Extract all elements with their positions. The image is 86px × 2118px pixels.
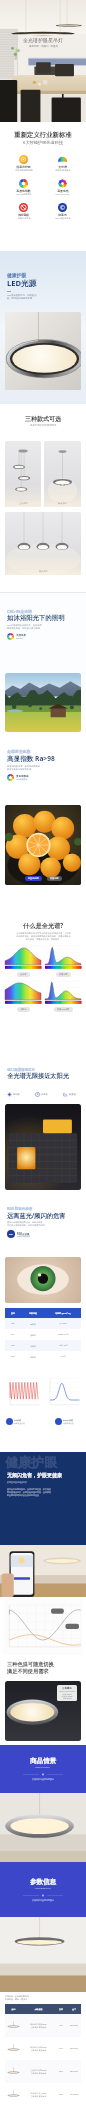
staticText: 36W bbox=[55, 2070, 67, 2073]
staticText: 图示 bbox=[5, 2008, 22, 2010]
staticText: 危害等级 bbox=[21, 1312, 45, 1314]
staticText: 10000~10万 bbox=[45, 1333, 81, 1336]
button[interactable]: 三头吊灯 长度90cm 三色变光 遥控调光 bbox=[5, 2060, 81, 2083]
staticText: 高显色指数 bbox=[16, 189, 31, 193]
staticText: CRI>98 Ra>98 bbox=[55, 193, 70, 196]
staticText: 6大智能护眼先进科技 bbox=[23, 140, 64, 146]
staticText: RG0无蓝光危害 bbox=[55, 217, 71, 220]
staticText: RG0 防蓝光危害 bbox=[7, 1206, 33, 1211]
staticText: LED发光柔和均匀，光照更自 然，明亮更舒适健康护眼 bbox=[7, 294, 37, 300]
staticText: 健康护眼 bbox=[5, 1454, 57, 1470]
button[interactable]: 高显色性 bbox=[43, 179, 82, 196]
staticText: 低危害 bbox=[21, 1334, 45, 1336]
staticText: LED光源 bbox=[7, 278, 37, 288]
staticText: 类别 bbox=[5, 1312, 21, 1314]
staticText: 进口美国普瑞芯片 bbox=[7, 1068, 35, 1072]
staticText: 规格参数 bbox=[22, 2008, 55, 2010]
staticText: 60×20cm bbox=[67, 2047, 81, 2050]
button[interactable]: 低衰减 bbox=[63, 1092, 76, 1097]
staticText: RG0认证级 bbox=[17, 1232, 30, 1235]
staticText: 120×20cm bbox=[67, 2093, 81, 2096]
staticText: 三头吊灯 长度90cm 三色变光 遥控调光 bbox=[22, 2069, 55, 2075]
staticText: 长寿命 bbox=[41, 1093, 48, 1096]
staticText: 环保材料认证 bbox=[63, 1422, 74, 1424]
staticText: 通过RG0国家级检测认证，无蓝光危害 守护家人的双眼健康，长时间使用不伤眼 bbox=[7, 1221, 45, 1227]
staticText: 中危害 bbox=[21, 1345, 45, 1347]
button[interactable]: 低蓝光护眼 bbox=[4, 155, 43, 172]
staticText: 远离蓝光/频闪的危害 bbox=[7, 1211, 66, 1219]
staticText: 全光谱无限接近太阳光 bbox=[7, 1072, 69, 1080]
staticText: 天然色质 bbox=[16, 634, 26, 637]
staticText: 高显色光源 bbox=[28, 877, 39, 880]
button[interactable]: 国标A级 bbox=[4, 203, 43, 220]
staticText: 高危害 bbox=[21, 1356, 45, 1358]
staticText: 灯体材质：铝材 + 亚克力 bbox=[5, 1998, 28, 2001]
button[interactable]: 双头吊灯 长度60cm 三色变光 遥控调光 bbox=[5, 2037, 81, 2060]
staticText: 24W bbox=[55, 2047, 67, 2050]
staticText: 三色调光 bbox=[62, 1687, 72, 1690]
staticText: 普通LED光源 bbox=[57, 1008, 70, 1011]
button[interactable]: 高显色光源 bbox=[25, 876, 42, 881]
staticText: 12W bbox=[55, 2024, 67, 2027]
staticText: RG1 bbox=[5, 1333, 21, 1336]
staticText: 防蓝光 bbox=[58, 213, 67, 217]
button[interactable]: CE认证 bbox=[6, 1418, 25, 1425]
staticText: 全面原生色彩 bbox=[7, 749, 31, 754]
staticText: 中性光 4500K bbox=[62, 1695, 73, 1697]
staticText: 普通光源 bbox=[50, 877, 59, 880]
button[interactable]: 太阳光 bbox=[5, 981, 41, 1012]
staticText: 暖光 3000K bbox=[63, 1693, 72, 1695]
button[interactable]: 全光谱 bbox=[43, 155, 82, 172]
button[interactable]: 防蓝光 bbox=[43, 203, 82, 220]
button[interactable]: 普通光源 bbox=[47, 876, 62, 881]
button[interactable]: 单头吊灯 直径20cm 三色变光 遥控调光 bbox=[5, 2014, 81, 2037]
staticText: 普通光源 bbox=[59, 973, 68, 976]
button[interactable]: 高显色指数 bbox=[4, 179, 43, 196]
staticText: 国标A级 bbox=[18, 213, 29, 217]
button[interactable]: 普通LED光源 bbox=[45, 981, 81, 1012]
staticText: >40万 bbox=[45, 1355, 81, 1358]
staticText: Ra>98还原真色 bbox=[16, 193, 32, 196]
button[interactable]: 普通光源 bbox=[45, 946, 81, 977]
staticText: 全光谱护眼星吊灯 bbox=[23, 37, 63, 43]
staticText: LED灯珠采用全光谱技术，真实还原 物体原本色彩，呵护家人视力健康 bbox=[7, 624, 42, 630]
button[interactable]: RoHS认证 bbox=[55, 1418, 74, 1425]
button[interactable]: RG0 bbox=[7, 1230, 31, 1238]
staticText: 高显指数 Ra>98 bbox=[7, 754, 55, 763]
staticText: 全光谱是指光源中包含可见光所有波长的连续光谱，与太阳 光谱高度接近，能真实还原物… bbox=[16, 932, 71, 941]
staticText: 满足不同空间的照明需求 bbox=[30, 424, 57, 427]
button[interactable]: 全光谱 bbox=[5, 946, 41, 977]
staticText: 三种色温可随意切换 bbox=[7, 1661, 54, 1668]
staticText: PARAMETER INFO bbox=[35, 1887, 51, 1890]
button[interactable]: 三头吊灯 bbox=[5, 441, 41, 507]
button[interactable]: 显色指数高 bbox=[7, 774, 29, 781]
staticText: 满足不同使用需求 bbox=[7, 1668, 49, 1675]
staticText: 产品细节与使用场景展示 bbox=[32, 1899, 54, 1902]
button[interactable]: 长寿命 bbox=[35, 1092, 48, 1097]
button[interactable]: 双头吊灯 bbox=[5, 512, 81, 575]
staticText: CRI>98 bbox=[16, 637, 23, 640]
staticText: 守护您的双眼健康 bbox=[15, 169, 33, 172]
staticText: 产品细节与使用场景展示 bbox=[32, 1778, 54, 1781]
staticText: 90×20cm bbox=[67, 2070, 81, 2073]
staticText: 参数信息 bbox=[30, 1878, 56, 1886]
staticText: 健康护眼 · 无频闪 · 高显指 bbox=[29, 44, 58, 47]
staticText: 显色指数高 bbox=[16, 775, 29, 778]
button[interactable]: 高光效 bbox=[7, 1092, 20, 1097]
staticText: 低衰减 bbox=[69, 1093, 76, 1096]
staticText: 全光谱 bbox=[58, 165, 67, 169]
staticText: 三头吊灯 bbox=[19, 502, 28, 505]
staticText: 重新定义行业新标准 bbox=[14, 131, 72, 139]
button[interactable]: 天然色质 bbox=[7, 633, 26, 640]
staticText: RG0 bbox=[5, 1322, 21, 1325]
staticText: 无蓝光危害级别 bbox=[17, 1235, 31, 1237]
staticText: 单头吊灯 bbox=[58, 502, 67, 505]
staticText: 太阳光 bbox=[20, 1008, 27, 1011]
staticText: 20×20cm bbox=[67, 2024, 81, 2027]
staticText: 什么是全光谱? bbox=[23, 921, 64, 929]
button[interactable]: 四头吊灯 长120cm 三色变光 遥控调光 bbox=[5, 2083, 81, 2106]
staticText: 无频闪无危害 bbox=[17, 217, 31, 220]
staticText: 48W bbox=[55, 2093, 67, 2096]
staticText: 无危害 bbox=[21, 1323, 45, 1325]
button[interactable]: 单头吊灯 bbox=[44, 441, 81, 507]
